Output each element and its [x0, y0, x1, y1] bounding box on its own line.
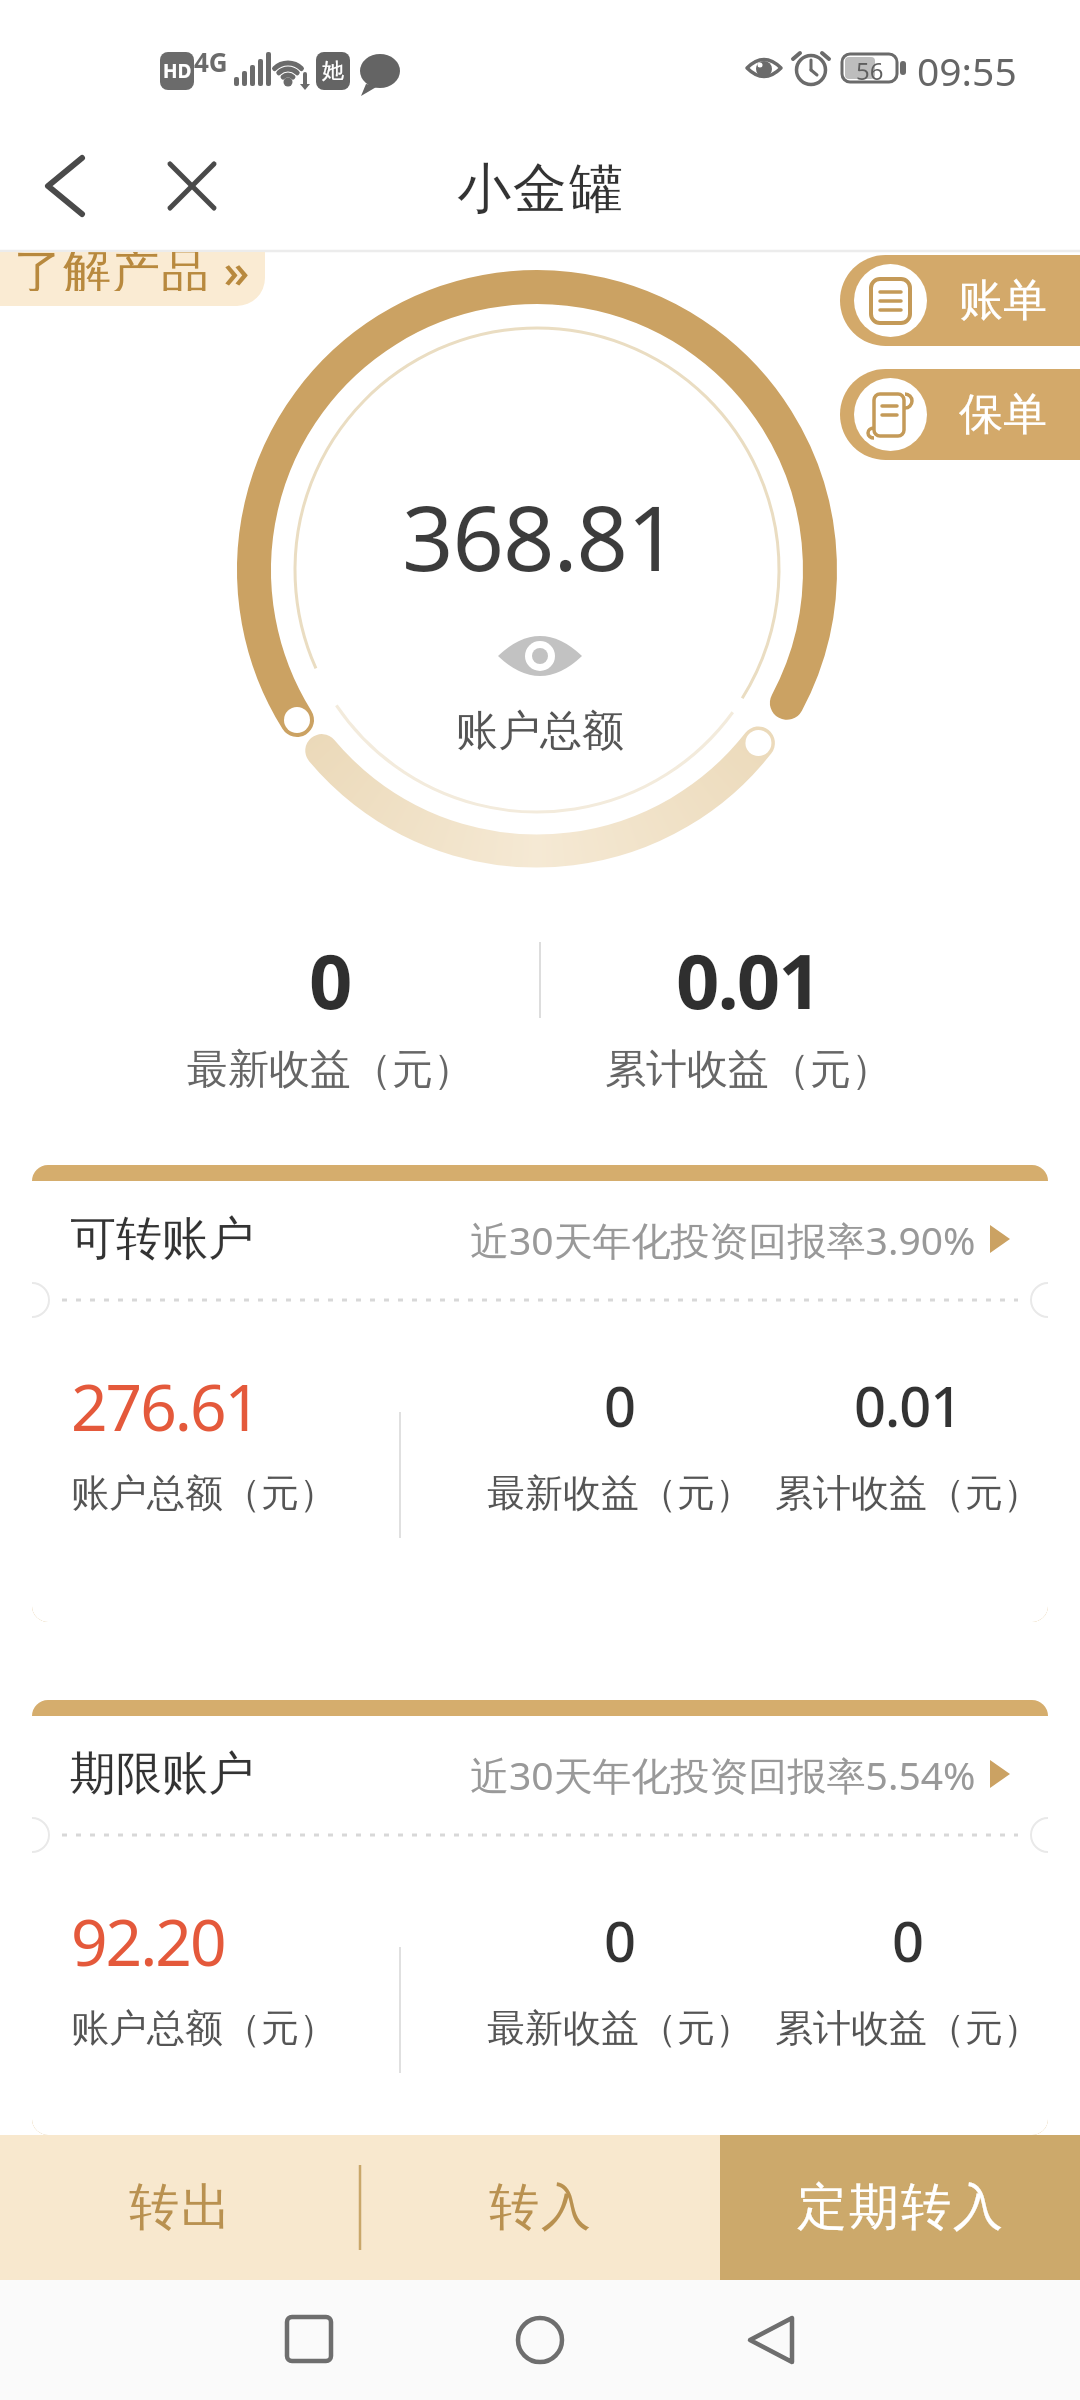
staticText: 92.20 [71, 1898, 225, 1982]
button[interactable] [504, 2305, 576, 2377]
button[interactable]: 了解产品 » [0, 252, 265, 306]
button[interactable]: 保单 [840, 369, 1080, 460]
staticText: 账单 [959, 273, 1047, 328]
button[interactable]: 定期转入 [720, 2135, 1080, 2280]
staticText: 账户总额（元） [71, 1469, 337, 1515]
staticText: 0.01 [854, 1367, 962, 1443]
staticText: 4G [194, 44, 228, 79]
staticText: 累计收益（元） [775, 2004, 1041, 2050]
staticText: 了解产品 » [14, 252, 251, 291]
staticText: 账户总额（元） [71, 2004, 337, 2050]
button[interactable]: 转入 [360, 2135, 720, 2280]
staticText: 近30天年化投资回报率5.54% [470, 1748, 976, 1800]
staticText: 保单 [959, 387, 1047, 442]
staticText: 累计收益（元） [775, 1469, 1041, 1515]
button[interactable] [275, 2305, 347, 2377]
button[interactable]: 转出 [0, 2135, 360, 2280]
staticText: 转入 [488, 2176, 592, 2239]
staticText: 0 [604, 1367, 636, 1443]
button[interactable] [30, 150, 100, 220]
button[interactable] [155, 150, 230, 220]
staticText: 0 [604, 1902, 636, 1978]
staticText: 368.81 [402, 475, 678, 597]
staticText: 定期转入 [796, 2176, 1004, 2239]
staticText: 最新收益（元） [487, 1469, 753, 1515]
staticText: 0.01 [676, 928, 820, 1022]
staticText: 近30天年化投资回报率3.90% [470, 1213, 976, 1265]
staticText: 可转账户 [70, 1210, 254, 1268]
staticText: 最新收益（元） [187, 1044, 474, 1092]
staticText: 09:55 [917, 44, 1017, 92]
staticText: 账户总额 [456, 705, 624, 751]
staticText: 小金罐 [456, 155, 624, 219]
staticText: 0 [309, 928, 351, 1022]
staticText: 56 [856, 54, 884, 82]
staticText: 她 [322, 57, 344, 85]
staticText: 276.61 [71, 1363, 260, 1447]
staticText: 期限账户 [70, 1745, 254, 1803]
button[interactable]: 可转账户 [32, 1165, 1048, 1622]
staticText: 0 [892, 1902, 924, 1978]
staticText: 累计收益（元） [605, 1044, 892, 1092]
button[interactable]: 期限账户 [32, 1700, 1048, 2135]
staticText: 转出 [128, 2176, 232, 2239]
staticText: HD [163, 58, 192, 84]
button[interactable] [734, 2305, 806, 2377]
staticText: 最新收益（元） [487, 2004, 753, 2050]
button[interactable]: 账单 [840, 255, 1080, 346]
